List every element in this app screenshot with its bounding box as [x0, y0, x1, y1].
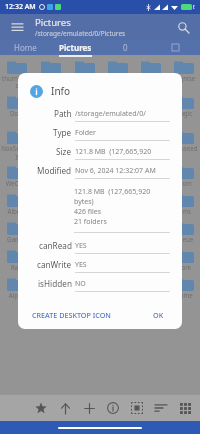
button[interactable]: Cognise — [167, 58, 200, 82]
staticText: Shots — [35, 263, 67, 271]
staticText: Modified — [37, 165, 72, 176]
staticText: OK — [153, 310, 164, 320]
button[interactable]: Notes — [34, 128, 68, 152]
button[interactable]: DreamArt — [34, 93, 68, 117]
button[interactable]: Temp — [68, 247, 101, 271]
button[interactable]: Pixlr — [68, 128, 101, 152]
button[interactable]: Go up — [53, 395, 77, 421]
button[interactable]: Favorites — [29, 395, 53, 421]
button[interactable]: Frame — [167, 275, 200, 299]
button[interactable]: Weibo — [34, 163, 68, 187]
staticText: isHidden — [38, 278, 72, 289]
staticText: Magic — [168, 109, 199, 117]
staticText: NoxSecurity — [1, 144, 33, 159]
staticText: Queue — [168, 235, 199, 243]
button[interactable]: Facebook — [68, 93, 101, 117]
button[interactable]: Cam2 — [68, 275, 101, 299]
staticText: Alpha — [1, 291, 33, 299]
staticText: 121.8 MB (127,665,920 bytes) — [75, 147, 170, 157]
button[interactable]: Messenger — [134, 93, 167, 124]
button[interactable]: Zedge — [134, 163, 167, 187]
staticText: 426 files — [74, 207, 102, 217]
button[interactable]: OK — [147, 306, 170, 324]
staticText: 12:32 AM — [5, 2, 36, 12]
staticText: Info — [51, 84, 71, 98]
button[interactable]: Echo — [134, 275, 167, 299]
button[interactable]: Info — [101, 395, 125, 421]
staticText: canRead — [39, 240, 72, 251]
staticText: NO — [75, 279, 170, 289]
button[interactable]: Other — [101, 219, 134, 243]
staticText: Size — [56, 146, 72, 157]
button[interactable]: Icons — [34, 219, 68, 243]
button[interactable]: Select all — [125, 395, 149, 421]
button[interactable]: Docs — [101, 191, 134, 215]
button[interactable]: Grid view — [173, 395, 197, 421]
staticText: Picsart — [102, 144, 133, 152]
staticText: Frame — [168, 291, 199, 299]
staticText: Echo — [135, 291, 166, 299]
staticText: WeChat — [1, 179, 33, 187]
button[interactable]: Paint — [134, 219, 167, 243]
button[interactable]: Chat Smith — [134, 58, 167, 89]
button[interactable]: Beta — [34, 275, 68, 299]
button[interactable]: Zoom — [167, 163, 200, 187]
staticText: Snapseed — [168, 144, 199, 152]
staticText: Music — [69, 235, 100, 243]
button[interactable]: Draft — [101, 275, 134, 299]
button[interactable]: bili — [68, 58, 101, 82]
button[interactable]: FaceApp — [101, 93, 134, 117]
button[interactable]: Games — [0, 219, 34, 243]
button[interactable]: thumbnails — [0, 58, 34, 89]
button[interactable]: WeChat — [0, 163, 34, 187]
staticText: Home — [14, 42, 37, 53]
button[interactable]: Queue — [167, 219, 200, 243]
button[interactable]: Used — [101, 247, 134, 271]
button[interactable]: Vids — [134, 247, 167, 271]
button[interactable]: Magic — [167, 93, 200, 117]
button[interactable]: Album — [0, 191, 34, 215]
button[interactable]: Home — [0, 40, 50, 55]
staticText: Zoom — [168, 179, 199, 187]
button[interactable]: AI Photo Enhancer — [34, 58, 68, 89]
button[interactable]: Music — [68, 219, 101, 243]
button[interactable]: Search — [173, 17, 193, 37]
staticText: Icons — [35, 235, 67, 243]
button[interactable]: Xiaomi — [68, 163, 101, 187]
button[interactable]: Dofu — [0, 93, 34, 117]
button[interactable]: Remini — [134, 128, 167, 152]
button[interactable]: Sort — [149, 395, 173, 421]
button[interactable]: 0 — [100, 40, 150, 55]
button[interactable]: Edits — [134, 191, 167, 215]
staticText: Album — [1, 207, 33, 215]
button[interactable]: CREATE DESKTOP ICON — [30, 306, 113, 324]
button[interactable]: Snapseed — [167, 128, 200, 152]
button[interactable]: Shots — [34, 247, 68, 271]
button[interactable]: Open navigation drawer — [7, 17, 27, 37]
button[interactable]: Films — [167, 191, 200, 215]
button[interactable]: More tabs — [150, 40, 200, 55]
staticText: Remini — [135, 144, 166, 152]
staticText: Facebook — [69, 109, 100, 117]
button[interactable]: Calligrapher — [101, 58, 134, 89]
button[interactable]: YouCam — [101, 163, 134, 187]
button[interactable]: Camera — [68, 191, 101, 215]
button[interactable]: Picsart — [101, 128, 134, 152]
button[interactable]: Work — [167, 247, 200, 271]
staticText: YES — [75, 260, 170, 270]
button[interactable]: Pictures — [50, 40, 100, 55]
button[interactable]: Alpha — [0, 275, 34, 299]
button[interactable]: Raw — [0, 247, 34, 271]
button[interactable]: NoxSecurity — [0, 128, 34, 159]
button[interactable]: Add — [77, 395, 101, 421]
